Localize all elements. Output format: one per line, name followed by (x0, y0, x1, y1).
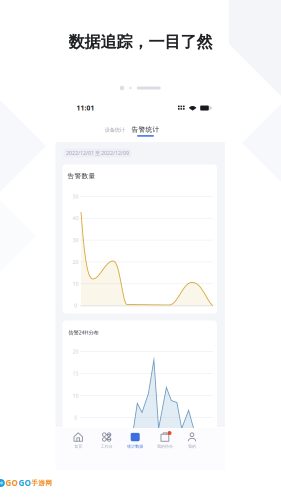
button[interactable]: 2022/12/01 至 2022/12/09 (63, 149, 131, 157)
staticText: 15 (72, 370, 78, 377)
staticText: 数据追踪，一目了然 (68, 32, 212, 52)
staticText: 首页 (74, 444, 82, 449)
staticText: 5 (74, 414, 77, 421)
button[interactable]: 首页 (64, 427, 92, 453)
staticText: 告警24H分布 (68, 329, 98, 336)
staticText: 40 (72, 215, 78, 222)
staticText: 0 (74, 302, 77, 309)
staticText: 设备统计 (105, 127, 125, 133)
staticText: 我的待办 (157, 444, 173, 449)
staticText: 我的 (188, 444, 196, 449)
staticText: GO (6, 478, 18, 488)
button[interactable]: 我的待办 (151, 427, 179, 453)
staticText: 2022/12/01 至 2022/12/09 (66, 149, 129, 157)
button[interactable]: 告警统计 (129, 124, 161, 138)
staticText: 告警数量 (67, 172, 95, 180)
button[interactable]: 我的 (178, 427, 206, 453)
staticText: 工作台 (101, 444, 113, 449)
staticText: 手游网 (31, 479, 52, 487)
button[interactable]: 统计数据 (121, 427, 149, 453)
button[interactable]: 工作台 (93, 427, 121, 453)
button[interactable]: 设备统计 (103, 124, 127, 136)
staticText: 30 (72, 237, 78, 244)
staticText: GO (18, 478, 30, 488)
staticText: 告警统计 (131, 125, 159, 134)
staticText: 统计数据 (127, 444, 143, 449)
staticText: 20 (72, 258, 78, 265)
staticText: 10 (72, 392, 78, 399)
staticText: 20 (72, 348, 78, 355)
staticText: 11:01 (76, 104, 94, 112)
staticText: 10 (72, 280, 78, 287)
staticText: 50 (72, 193, 78, 200)
